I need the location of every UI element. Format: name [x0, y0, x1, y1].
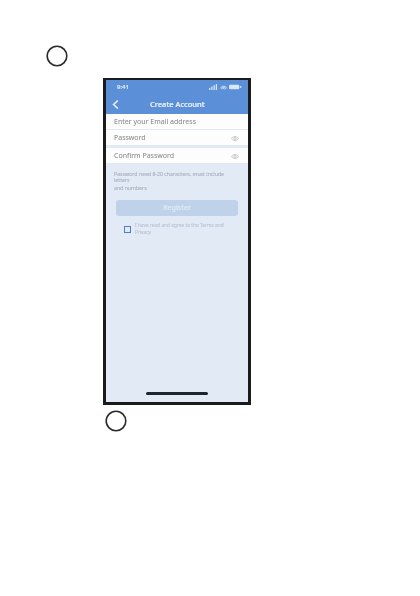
staticText: Password need 8-20 characters, must incl…: [114, 170, 240, 184]
button[interactable]: Enter your Email address: [106, 114, 248, 129]
staticText: and numbers: [114, 184, 147, 191]
button[interactable]: Register: [116, 200, 238, 216]
staticText: 9:41: [117, 83, 129, 91]
button[interactable]: Show password: [230, 151, 240, 161]
staticText: Confirm Password: [114, 151, 230, 161]
staticText: I have read and agree to the Terms and P…: [135, 222, 230, 236]
button[interactable]: Back: [106, 95, 124, 113]
staticText: Create Account: [150, 99, 205, 109]
staticText: Enter your Email address: [114, 117, 240, 127]
button[interactable]: Show password: [230, 133, 240, 143]
staticText: Register: [163, 203, 191, 213]
button[interactable]: I have read and agree to the Terms and P…: [124, 222, 230, 236]
button[interactable]: Password: [106, 130, 248, 145]
staticText: Password: [114, 133, 230, 143]
button[interactable]: Confirm Password: [106, 148, 248, 163]
